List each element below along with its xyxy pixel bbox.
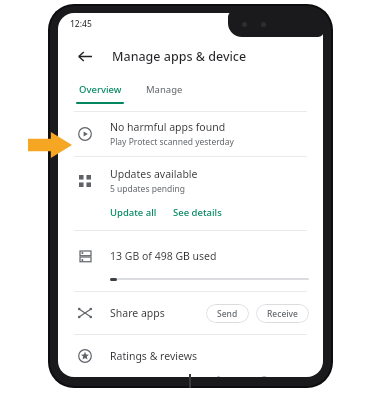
staticText: No harmful apps found	[110, 120, 226, 134]
staticText: Share apps	[110, 306, 165, 320]
button[interactable]: Manage	[142, 77, 187, 96]
staticText: See details	[173, 206, 222, 219]
staticText: Receive	[267, 308, 298, 320]
staticText: Manage apps & device	[112, 48, 247, 65]
staticText: Overview	[79, 83, 122, 96]
staticText: Update all	[110, 206, 157, 219]
button[interactable]: Share apps	[58, 292, 323, 334]
staticText: Updates available	[110, 167, 198, 181]
staticText: 13 GB of 498 GB used	[110, 249, 217, 263]
button[interactable]: No harmful apps found	[58, 112, 323, 156]
button[interactable]: 13 GB of 498 GB used	[58, 231, 323, 291]
staticText: 5 updates pending	[110, 183, 185, 195]
button[interactable]: Updates available	[58, 157, 323, 230]
staticText: Ratings & reviews	[110, 349, 197, 363]
staticText: Send	[217, 308, 238, 320]
button[interactable]: Ratings & reviews	[58, 335, 323, 377]
staticText: Play Protect scanned yesterday	[110, 136, 234, 148]
button[interactable]: Receive	[256, 304, 309, 323]
staticText: 12:45	[70, 18, 92, 30]
button[interactable]: Update all	[110, 206, 157, 219]
button[interactable]: See details	[173, 206, 222, 219]
staticText: Manage	[146, 83, 183, 96]
button[interactable]: Overview	[72, 77, 128, 104]
button[interactable]: Send	[206, 304, 249, 323]
button[interactable]: Back	[68, 40, 100, 72]
